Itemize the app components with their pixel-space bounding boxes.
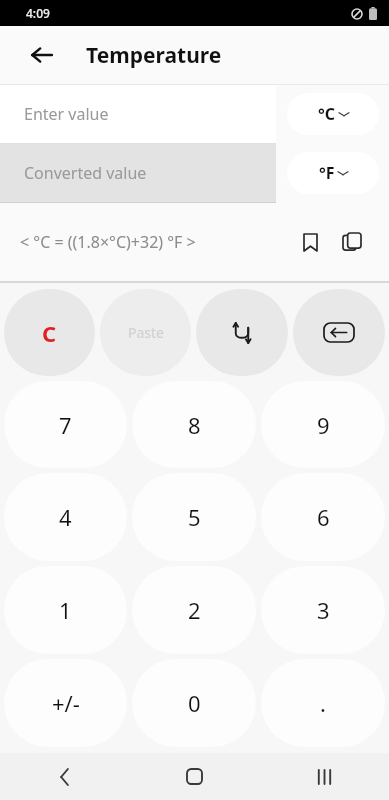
staticText: 3: [317, 595, 330, 625]
button[interactable]: 0: [132, 659, 256, 747]
button[interactable]: 3: [261, 566, 385, 654]
staticText: Enter value: [24, 103, 109, 125]
staticText: 0: [188, 688, 201, 718]
button[interactable]: Converted value: [0, 144, 276, 202]
button[interactable]: Back: [22, 35, 62, 75]
button[interactable]: 7: [4, 381, 127, 468]
button[interactable]: °C: [287, 93, 379, 135]
button[interactable]: °F: [287, 152, 379, 194]
staticText: 8: [188, 410, 201, 440]
staticText: 2: [188, 595, 201, 625]
staticText: 4: [59, 502, 72, 532]
button[interactable]: .: [261, 659, 385, 747]
staticText: 5: [188, 502, 201, 532]
staticText: .: [320, 688, 326, 718]
staticText: 7: [59, 410, 72, 440]
button[interactable]: 9: [261, 381, 385, 468]
button[interactable]: 8: [132, 381, 256, 468]
staticText: C: [42, 318, 57, 348]
button[interactable]: Bookmark: [293, 225, 327, 259]
button[interactable]: Copy: [335, 225, 369, 259]
staticText: °F: [319, 162, 335, 184]
button[interactable]: Recents: [259, 753, 389, 800]
button[interactable]: +/-: [4, 659, 127, 747]
button[interactable]: Swap units: [196, 289, 288, 376]
button[interactable]: 4: [4, 473, 127, 561]
staticText: Temperature: [86, 41, 222, 70]
button[interactable]: Back: [0, 753, 129, 800]
button[interactable]: 6: [261, 473, 385, 561]
staticText: 1: [59, 595, 72, 625]
button[interactable]: Home: [129, 753, 259, 800]
button[interactable]: C: [4, 289, 95, 376]
staticText: +/-: [52, 688, 80, 718]
button[interactable]: 2: [132, 566, 256, 654]
staticText: °C: [318, 103, 336, 125]
button[interactable]: Paste: [100, 289, 191, 376]
staticText: 9: [317, 410, 330, 440]
staticText: < °C = ((1.8×°C)+32) °F >: [20, 231, 293, 253]
button[interactable]: Enter value: [0, 85, 276, 143]
button[interactable]: 1: [4, 566, 127, 654]
button[interactable]: Backspace: [293, 289, 385, 376]
staticText: Converted value: [24, 162, 147, 184]
button[interactable]: 5: [132, 473, 256, 561]
staticText: 6: [317, 502, 330, 532]
staticText: Paste: [124, 323, 168, 342]
staticText: 4:09: [26, 5, 50, 21]
